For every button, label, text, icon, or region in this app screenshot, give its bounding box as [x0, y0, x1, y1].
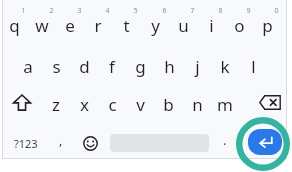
staticText: 4 [105, 6, 110, 16]
button[interactable]: i [197, 6, 225, 40]
staticText: 5 [133, 6, 138, 16]
button[interactable]: ?123 [6, 128, 46, 158]
staticText: z [52, 93, 60, 116]
staticText: e [65, 14, 75, 37]
button[interactable]: m [211, 85, 239, 119]
staticText: 0 [274, 6, 279, 16]
staticText: 9 [246, 6, 251, 16]
staticText: x [80, 93, 89, 116]
button[interactable]: w [28, 6, 56, 40]
staticText: l [251, 55, 256, 78]
staticText: u [178, 14, 189, 37]
staticText: t [123, 14, 130, 37]
button[interactable]: , [50, 128, 72, 158]
staticText: i [209, 14, 214, 37]
button[interactable]: z [42, 85, 70, 119]
button[interactable]: t [112, 6, 140, 40]
button[interactable]: j [183, 47, 211, 81]
button[interactable]: Shift [6, 86, 38, 118]
button[interactable]: p [253, 6, 281, 40]
staticText: ?123 [14, 136, 38, 151]
staticText: 3 [77, 6, 82, 16]
staticText: , [59, 131, 63, 149]
staticText: q [9, 14, 20, 37]
button[interactable]: o [225, 6, 253, 40]
button[interactable]: c [98, 85, 126, 119]
staticText: b [163, 93, 174, 116]
staticText: d [79, 55, 90, 78]
staticText: j [195, 55, 200, 78]
button[interactable]: l [239, 47, 267, 81]
staticText: o [234, 14, 245, 37]
staticText: c [108, 93, 117, 116]
staticText: y [151, 14, 160, 37]
staticText: n [192, 93, 203, 116]
staticText: 7 [190, 6, 195, 16]
button[interactable]: h [155, 47, 183, 81]
staticText: 8 [218, 6, 223, 16]
button[interactable]: x [70, 85, 98, 119]
button[interactable]: g [126, 47, 154, 81]
button[interactable]: r [84, 6, 112, 40]
staticText: h [164, 55, 175, 78]
staticText: f [109, 55, 115, 78]
button[interactable]: n [183, 85, 211, 119]
staticText: v [136, 93, 145, 116]
button[interactable]: . [214, 128, 236, 158]
staticText: r [94, 14, 102, 37]
button[interactable]: b [154, 85, 182, 119]
staticText: w [35, 14, 49, 37]
staticText: a [23, 55, 33, 78]
staticText: . [223, 131, 227, 149]
staticText: 1 [21, 6, 26, 16]
button[interactable]: d [70, 47, 98, 81]
button[interactable]: q [0, 6, 28, 40]
staticText: 2 [49, 6, 54, 16]
staticText: s [52, 55, 61, 78]
button[interactable]: s [42, 47, 70, 81]
button[interactable]: e [56, 6, 84, 40]
button[interactable]: Backspace [254, 86, 286, 118]
button[interactable]: f [98, 47, 126, 81]
button[interactable]: Enter [248, 129, 282, 155]
staticText: k [220, 55, 230, 78]
button[interactable]: v [126, 85, 154, 119]
button[interactable]: Emoji [78, 128, 102, 158]
button[interactable]: y [141, 6, 169, 40]
staticText: g [135, 55, 146, 78]
staticText: p [262, 14, 273, 37]
staticText: 6 [162, 6, 167, 16]
button[interactable]: u [169, 6, 197, 40]
button[interactable]: a [14, 47, 42, 81]
button[interactable]: k [211, 47, 239, 81]
staticText: m [217, 93, 233, 116]
